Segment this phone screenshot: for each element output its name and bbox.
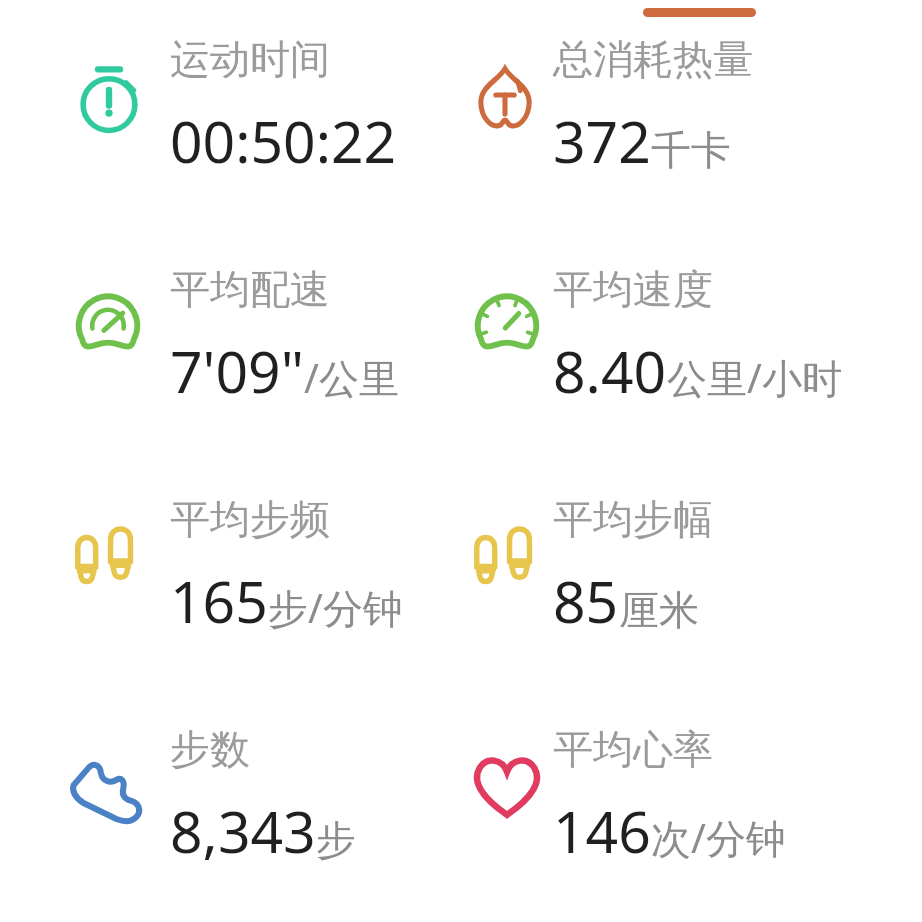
other: Calories [471,64,539,132]
staticText: 步/分钟 [268,580,403,635]
other: Duration [72,62,146,136]
staticText: 165 [170,562,268,640]
staticText: 平均步幅 [553,494,713,544]
staticText: 厘米 [619,585,699,635]
button[interactable]: Average cadence [0,494,461,724]
other: Average speed [469,288,545,364]
button[interactable]: Average heart rate [461,724,922,922]
other: Average stride [469,518,547,596]
staticText: 平均速度 [553,264,713,314]
staticText: 平均步频 [170,494,330,544]
button[interactable]: Steps [0,724,461,922]
staticText: 运动时间 [170,34,330,84]
button[interactable]: Average stride [461,494,922,724]
staticText: 7'09" [170,332,304,410]
staticText: 平均配速 [170,264,330,314]
button[interactable]: Average pace [0,264,461,494]
staticText: 次/分钟 [651,810,786,865]
button[interactable]: Duration [0,34,461,264]
other: Average pace [70,288,146,364]
staticText: 平均心率 [553,724,713,774]
staticText: 总消耗热量 [553,34,753,84]
staticText: 00:50:22 [170,102,397,180]
staticText: 146 [553,792,651,870]
other: Steps [66,750,150,834]
staticText: 8.40 [553,332,667,410]
other: Average cadence [70,518,148,596]
staticText: /公里 [304,350,399,405]
staticText: 85 [553,562,619,640]
staticText: 步 [316,815,356,865]
staticText: 步数 [170,724,250,774]
staticText: 公里/小时 [667,350,842,405]
staticText: 372 [553,102,651,180]
button[interactable]: Average speed [461,264,922,494]
staticText: 千卡 [651,125,731,175]
other: Average heart rate [469,750,545,826]
button[interactable]: Calories [461,34,922,264]
staticText: 8,343 [170,792,316,870]
